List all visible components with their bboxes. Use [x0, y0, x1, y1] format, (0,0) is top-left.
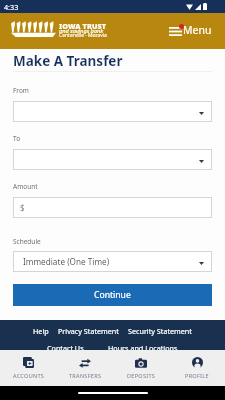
button[interactable]: PROFILE — [169, 350, 225, 386]
staticText: IOWA TRUST — [59, 21, 107, 31]
button[interactable] — [13, 101, 212, 122]
staticText: Amount — [13, 182, 38, 191]
staticText: From — [13, 86, 29, 95]
button[interactable]: ACCOUNTS — [0, 350, 57, 386]
staticText: and savings bank — [59, 27, 104, 35]
staticText: DEPOSITS — [127, 372, 156, 379]
staticText: TRANSFERS — [69, 372, 102, 379]
button[interactable]: Continue — [13, 284, 212, 306]
staticText: Make A Transfer — [13, 52, 123, 70]
staticText: $ — [20, 202, 25, 213]
button[interactable]: DEPOSITS — [113, 350, 169, 386]
button[interactable]: Help — [33, 326, 49, 336]
staticText: 4:33 — [4, 2, 19, 12]
button[interactable]: Privacy Statement — [58, 326, 119, 336]
staticText: Centerville · Moravia — [59, 32, 107, 39]
button[interactable]: $ — [13, 197, 212, 218]
button[interactable]: Immediate (One Time) — [13, 251, 212, 272]
button[interactable]: Menu — [164, 21, 214, 41]
staticText: Immediate (One Time) — [23, 256, 110, 267]
staticText: Schedule — [13, 237, 41, 246]
staticText: ACCOUNTS — [13, 372, 45, 379]
button[interactable]: TRANSFERS — [57, 350, 113, 386]
staticText: Menu — [183, 23, 212, 37]
button[interactable]: Security Statement — [128, 326, 192, 336]
button[interactable] — [13, 149, 212, 170]
button[interactable]: Hours and Locations — [108, 343, 178, 350]
button[interactable]: Contact Us — [47, 343, 84, 350]
staticText: To — [13, 134, 21, 143]
staticText: Continue — [94, 289, 131, 301]
staticText: PROFILE — [185, 372, 209, 379]
